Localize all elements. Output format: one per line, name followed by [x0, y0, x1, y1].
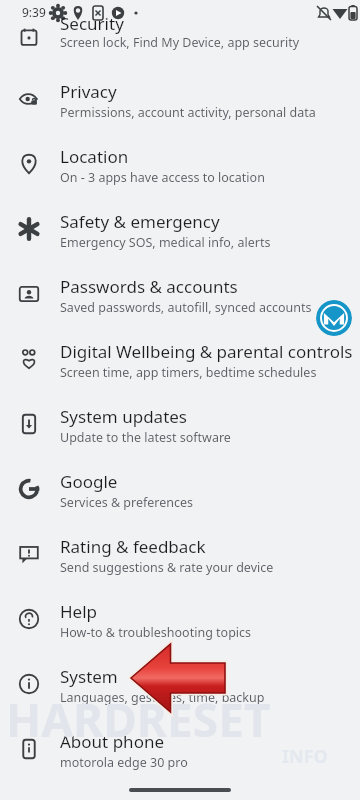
button[interactable]: Google: [0, 468, 360, 526]
staticText: 9:39: [22, 4, 46, 20]
button[interactable]: Digital Wellbeing & parental controls: [0, 338, 360, 396]
staticText: Permissions, account activity, personal …: [60, 104, 316, 121]
staticText: Services & preferences: [60, 494, 194, 511]
staticText: Emergency SOS, medical info, alerts: [60, 234, 271, 251]
button[interactable]: Rating & feedback: [0, 533, 360, 591]
staticText: On - 3 apps have access to location: [60, 169, 265, 186]
staticText: Security: [60, 12, 124, 35]
staticText: How-to & troubleshooting topics: [60, 624, 252, 641]
staticText: About phone: [60, 730, 165, 753]
staticText: Saved passwords, autofill, synced accoun…: [60, 299, 312, 316]
button[interactable]: Location: [0, 143, 360, 201]
button[interactable]: About phone: [0, 728, 360, 786]
staticText: Send suggestions & rate your device: [60, 559, 274, 576]
button[interactable]: Security: [0, 14, 360, 72]
staticText: Screen time, app timers, bedtime schedul…: [60, 364, 317, 381]
staticText: Digital Wellbeing & parental controls: [60, 340, 353, 363]
staticText: Privacy: [60, 80, 117, 103]
staticText: Screen lock, Find My Device, app securit…: [60, 34, 300, 51]
button[interactable]: Passwords & accounts: [0, 273, 360, 331]
staticText: System updates: [60, 405, 188, 428]
staticText: Google: [60, 470, 118, 493]
button[interactable]: Safety & emergency: [0, 208, 360, 266]
staticText: Safety & emergency: [60, 210, 220, 233]
button[interactable]: System: [0, 663, 360, 721]
staticText: Location: [60, 145, 129, 168]
staticText: System: [60, 665, 118, 688]
staticText: Languages, gestures, time, backup: [60, 689, 265, 706]
staticText: Help: [60, 600, 98, 623]
button[interactable]: Motorola assistant: [316, 300, 352, 336]
staticText: Rating & feedback: [60, 535, 206, 558]
button[interactable]: Help: [0, 598, 360, 656]
button[interactable]: Privacy: [0, 78, 360, 136]
button[interactable]: System updates: [0, 403, 360, 461]
staticText: motorola edge 30 pro: [60, 754, 188, 771]
staticText: Update to the latest software: [60, 429, 231, 446]
staticText: Passwords & accounts: [60, 275, 238, 298]
